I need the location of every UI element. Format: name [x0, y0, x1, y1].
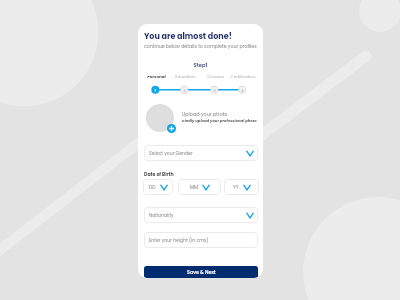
button[interactable]: MM — [178, 179, 221, 195]
button[interactable]: Save & Next — [144, 266, 258, 278]
button[interactable]: Education — [168, 74, 202, 80]
button[interactable]: Step 4 — [237, 85, 247, 95]
staticText: You are almost done! — [144, 31, 232, 42]
staticText: Enter your height (in cms) — [149, 237, 209, 243]
staticText: 3 — [213, 88, 216, 93]
button[interactable]: Step 3 — [209, 85, 219, 95]
staticText: Date of Birth — [144, 171, 174, 178]
staticText: YY — [233, 184, 239, 190]
staticText: Courses — [207, 74, 224, 80]
staticText: DD — [149, 184, 156, 190]
button[interactable]: Certification — [226, 74, 260, 80]
staticText: Education — [175, 74, 196, 80]
staticText: Nationality — [149, 212, 174, 218]
button[interactable]: Enter your height (in cms) — [144, 232, 258, 248]
staticText: Select your Gender — [149, 150, 193, 156]
button[interactable]: Add photo — [167, 124, 176, 133]
staticText: Upload your photo — [182, 111, 228, 118]
staticText: continue below details to complete your … — [144, 43, 257, 50]
staticText: MM — [190, 184, 198, 190]
button[interactable]: Nationality — [144, 207, 258, 223]
button[interactable]: Select your Gender — [144, 145, 258, 161]
staticText: 2 — [183, 88, 186, 93]
staticText: Personal — [147, 74, 166, 80]
button[interactable]: YY — [224, 179, 259, 195]
staticText: Kindly upload your professional photo — [182, 118, 257, 123]
button[interactable]: Courses — [198, 74, 232, 80]
button[interactable]: Step 1 — [150, 85, 160, 95]
staticText: Certification — [230, 74, 256, 80]
staticText: Save & Next — [187, 269, 216, 276]
button[interactable]: Upload photo — [146, 104, 174, 132]
staticText: 1 — [154, 88, 156, 93]
staticText: Step1 — [138, 62, 263, 69]
button[interactable]: DD — [143, 179, 173, 195]
button[interactable]: Personal — [139, 74, 173, 80]
staticText: 4 — [241, 88, 244, 93]
button[interactable]: Step 2 — [179, 85, 189, 95]
